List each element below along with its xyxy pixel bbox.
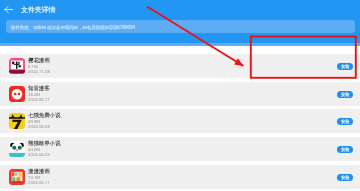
staticText: 安装 — [341, 64, 350, 69]
staticText: 熊猫敢界小说 — [28, 140, 61, 147]
staticText: 8.1M — [28, 64, 38, 70]
staticText: 44.6M — [28, 147, 41, 153]
button[interactable]: 软件失效、不能用 或不会用等问题，如有反馈请加QQ群789654 — [6, 20, 355, 33]
staticText: 2024-06-11 — [28, 97, 50, 103]
staticText: 2024-11-08 — [28, 69, 50, 75]
button[interactable]: Back — [0, 1, 17, 18]
staticText: 软件失效、不能用 或不会用等问题，如有反馈请加QQ群789654 — [11, 24, 136, 30]
button[interactable]: 安装 — [337, 174, 353, 181]
button[interactable]: 樱花漫画 — [0, 54, 360, 78]
button[interactable]: 安装 — [337, 118, 353, 125]
staticText: 2024-08-08 — [28, 124, 50, 130]
staticText: 安装 — [341, 119, 350, 124]
button[interactable]: 七猫免费小说 — [0, 109, 360, 133]
staticText: 49.9M — [28, 119, 41, 125]
staticText: 38.2M — [28, 92, 41, 98]
staticText: 安装 — [341, 147, 350, 152]
staticText: 安装 — [341, 175, 350, 180]
staticText: 2024-04-05 — [28, 152, 50, 158]
button[interactable]: 安装 — [337, 63, 353, 70]
button[interactable]: 知音漫客 — [0, 82, 360, 106]
staticText: 安装 — [341, 92, 350, 97]
staticText: 漫漫漫画 — [28, 168, 50, 175]
staticText: 七猫免费小说 — [28, 112, 61, 119]
staticText: 2024-06-11 — [28, 180, 50, 186]
staticText: 知音漫客 — [28, 85, 50, 92]
button[interactable]: 熊猫敢界小说 — [0, 137, 360, 161]
staticText: 樱花漫画 — [28, 57, 50, 64]
button[interactable]: 安装 — [337, 91, 353, 98]
button[interactable]: 安装 — [337, 146, 353, 153]
button[interactable]: 漫漫漫画 — [0, 165, 360, 189]
staticText: 10.1M — [28, 175, 41, 181]
staticText: 文件夹详情 — [21, 5, 56, 14]
